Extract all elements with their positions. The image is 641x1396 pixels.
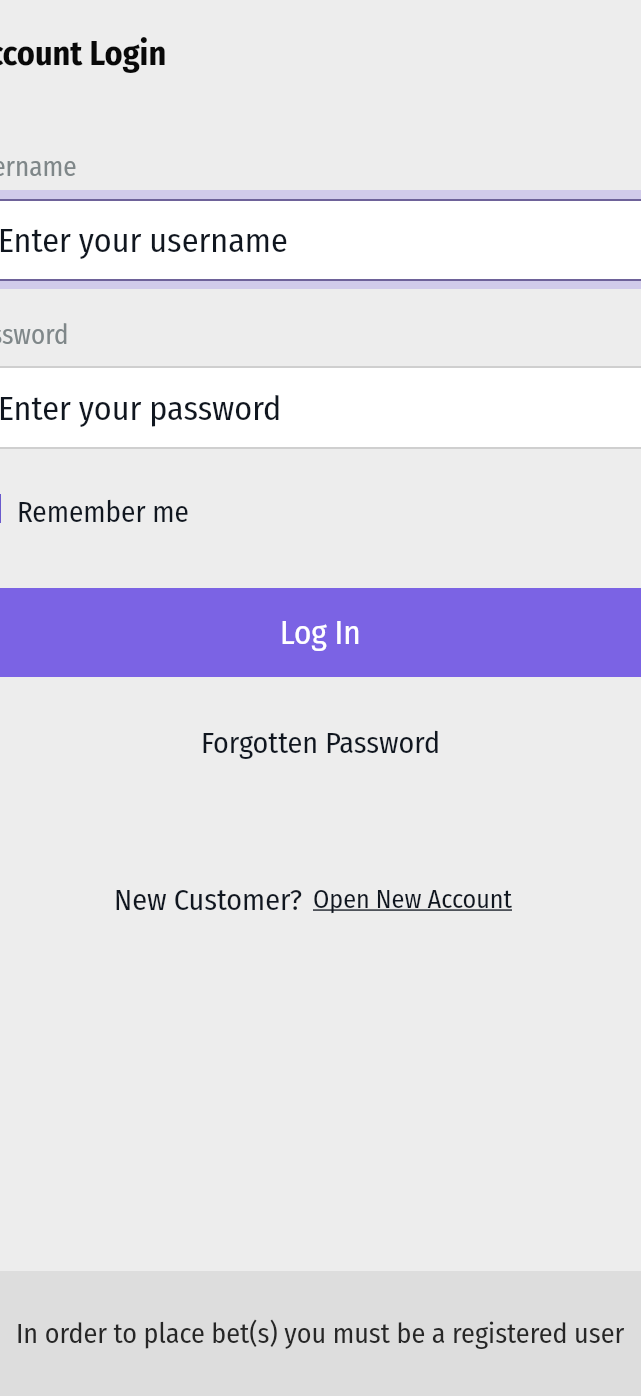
staticText: Log In — [280, 613, 361, 653]
staticText: Forgotten Password — [201, 725, 441, 761]
staticText: New Customer? — [114, 882, 303, 918]
button[interactable]: Open New Account — [313, 884, 513, 915]
staticText: In order to place bet(s) you must be a r… — [16, 1317, 625, 1351]
staticText: Password — [0, 319, 69, 351]
button[interactable]: Log In — [0, 588, 641, 677]
staticText: Username — [0, 151, 77, 183]
button[interactable]: Enter your password — [0, 368, 641, 448]
staticText: Open New Account — [313, 884, 513, 915]
staticText: Account Login — [0, 33, 167, 74]
staticText: Enter your password — [0, 388, 282, 429]
button[interactable]: Enter your username — [0, 201, 641, 279]
button[interactable]: Forgotten Password — [0, 718, 641, 768]
staticText: Enter your username — [0, 220, 288, 261]
